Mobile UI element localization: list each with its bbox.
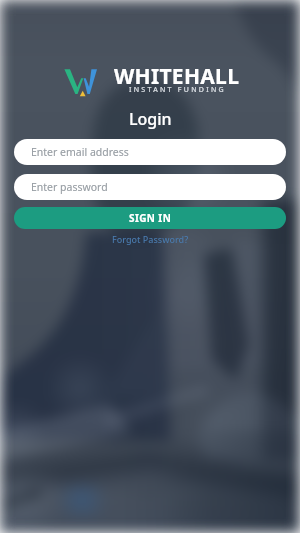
- staticText: Enter email address: [31, 145, 129, 159]
- button[interactable]: Enter email address: [14, 139, 286, 165]
- button[interactable]: Enter password: [14, 174, 286, 200]
- staticText: SIGN IN: [129, 211, 172, 225]
- button[interactable]: Forgot Password?: [108, 232, 193, 246]
- staticText: Login: [129, 108, 172, 130]
- staticText: INSTANT FUNDING: [129, 85, 226, 95]
- staticText: Enter password: [31, 180, 108, 194]
- button[interactable]: SIGN IN: [14, 207, 286, 229]
- staticText: Forgot Password?: [112, 233, 189, 245]
- staticText: WHITEHALL: [114, 62, 240, 91]
